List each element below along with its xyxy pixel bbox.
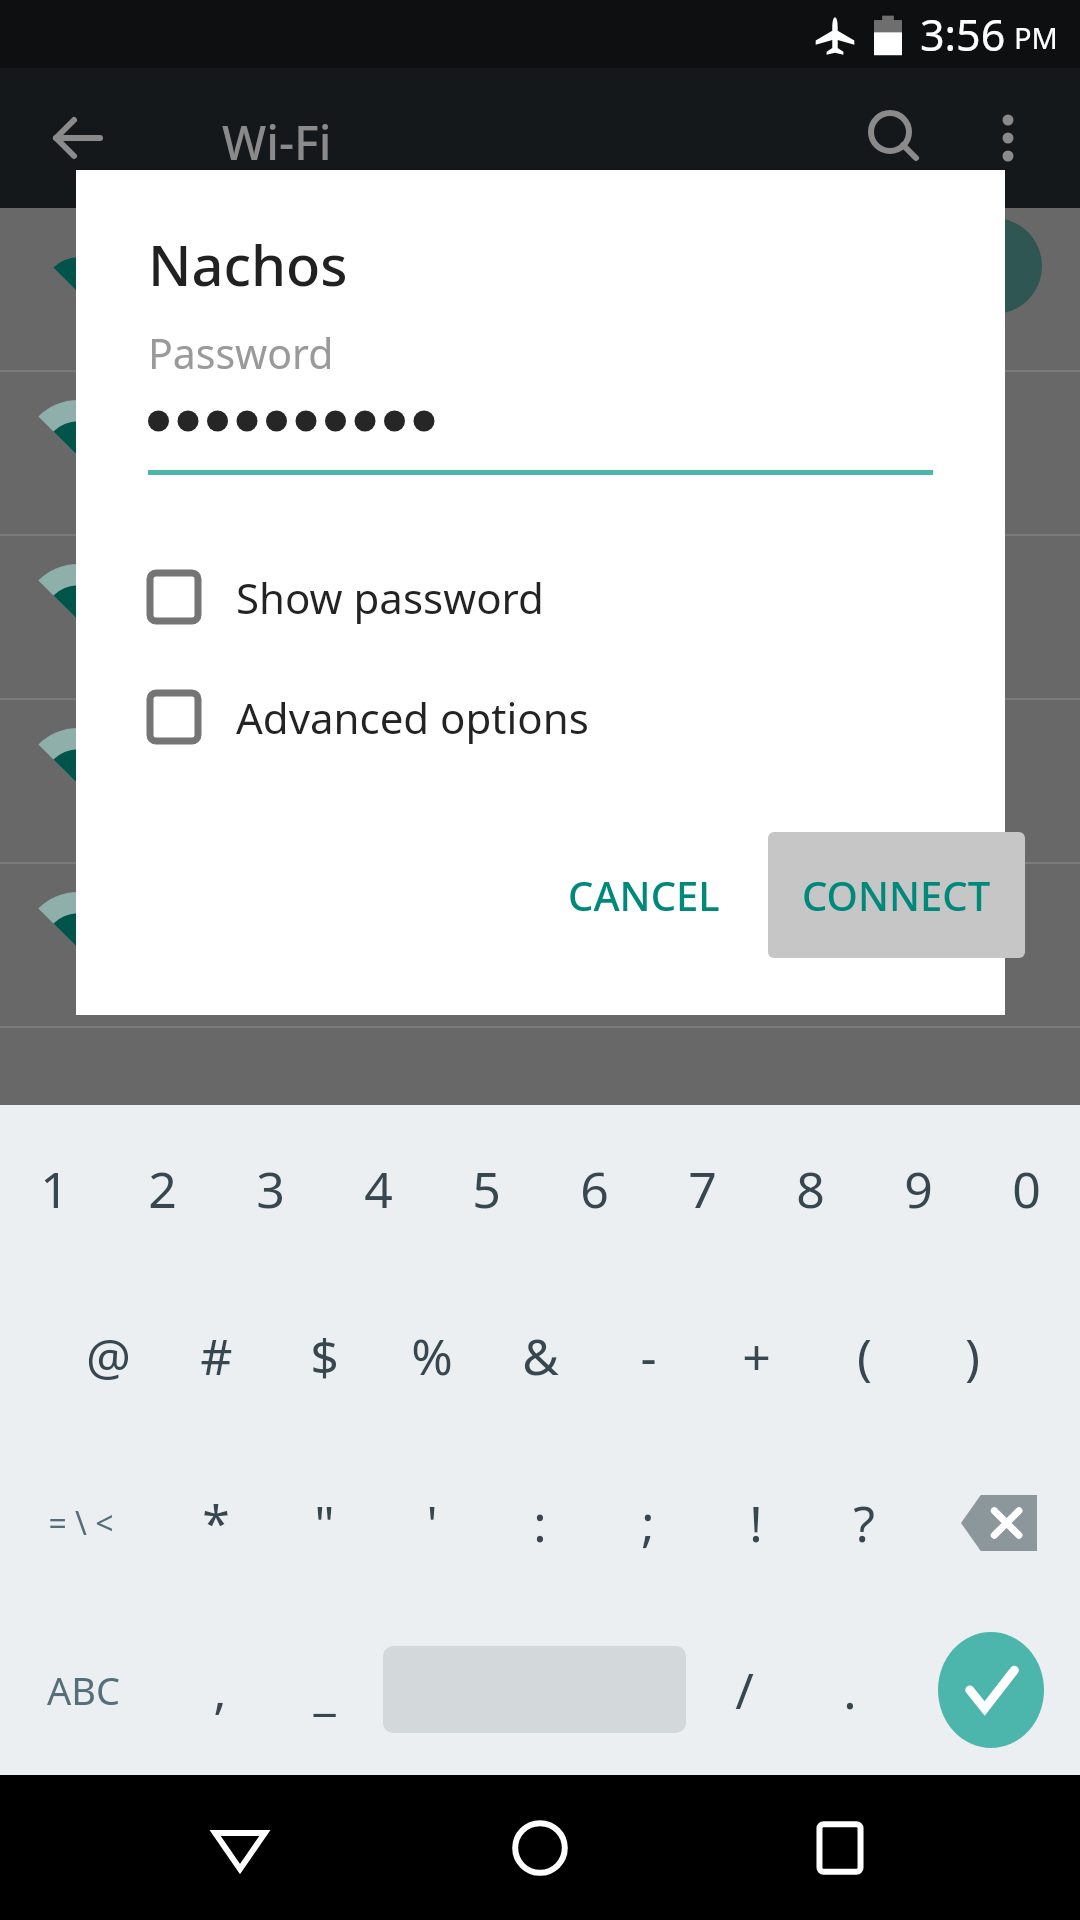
button[interactable]: & xyxy=(486,1272,594,1439)
button[interactable]: 2 xyxy=(108,1105,216,1272)
staticText: 3:56 xyxy=(920,5,1006,64)
button[interactable]: 3 xyxy=(216,1105,324,1272)
staticText: _ xyxy=(313,1656,336,1724)
button[interactable]: 9 xyxy=(864,1105,972,1272)
button[interactable]: ! xyxy=(702,1439,810,1606)
staticText: . xyxy=(843,1656,857,1724)
staticText: ) xyxy=(965,1322,980,1390)
staticText: PM xyxy=(1014,18,1058,57)
staticText: " xyxy=(314,1489,335,1557)
button[interactable]: @ xyxy=(54,1272,162,1439)
button[interactable]: : xyxy=(486,1439,594,1606)
staticText: + xyxy=(742,1322,771,1390)
staticText: 4 xyxy=(364,1155,393,1223)
staticText: 6 xyxy=(580,1155,609,1223)
staticText: ( xyxy=(857,1322,872,1390)
staticText: Wi-Fi xyxy=(222,110,332,174)
button[interactable]: * xyxy=(162,1439,270,1606)
button[interactable]: Search xyxy=(852,96,936,180)
staticText: # xyxy=(200,1322,233,1390)
staticText: ! xyxy=(749,1489,763,1557)
staticText: @ xyxy=(86,1322,131,1390)
button[interactable]: ) xyxy=(918,1272,1026,1439)
button[interactable]: Advanced options xyxy=(136,672,776,762)
staticText: % xyxy=(411,1322,453,1390)
staticText: ? xyxy=(853,1489,875,1557)
button[interactable]: " xyxy=(270,1439,378,1606)
button[interactable]: 8 xyxy=(756,1105,864,1272)
button[interactable]: ; xyxy=(594,1439,702,1606)
staticText: Nachos xyxy=(148,226,348,302)
button[interactable]: Letters xyxy=(0,1606,167,1773)
button[interactable]: Back xyxy=(36,96,120,180)
button[interactable]: $ xyxy=(270,1272,378,1439)
staticText: : xyxy=(533,1489,547,1557)
button[interactable]: ? xyxy=(810,1439,918,1606)
button[interactable]: More options xyxy=(966,96,1050,180)
staticText: , xyxy=(213,1656,227,1724)
staticText: Show password xyxy=(236,569,544,626)
button[interactable]: More symbols xyxy=(0,1439,162,1606)
button[interactable]: % xyxy=(378,1272,486,1439)
staticText: Password xyxy=(148,325,334,381)
staticText: ABC xyxy=(47,1664,120,1716)
staticText: 1 xyxy=(40,1155,69,1223)
staticText: / xyxy=(735,1656,754,1724)
button[interactable]: + xyxy=(702,1272,810,1439)
button[interactable]: . xyxy=(797,1606,902,1773)
staticText: * xyxy=(202,1489,230,1557)
staticText: CANCEL xyxy=(568,868,720,922)
button[interactable]: 5 xyxy=(432,1105,540,1272)
staticText: 3 xyxy=(256,1155,285,1223)
staticText: $ xyxy=(310,1322,339,1390)
button[interactable]: / xyxy=(692,1606,797,1773)
button[interactable]: ' xyxy=(378,1439,486,1606)
staticText: 5 xyxy=(472,1155,501,1223)
staticText: 2 xyxy=(148,1155,177,1223)
button[interactable]: 0 xyxy=(972,1105,1080,1272)
button[interactable]: Recent apps xyxy=(780,1788,900,1908)
button[interactable]: Backspace xyxy=(918,1439,1080,1606)
button[interactable]: , xyxy=(167,1606,272,1773)
staticText: & xyxy=(522,1322,559,1390)
button[interactable]: 7 xyxy=(648,1105,756,1272)
staticText: CONNECT xyxy=(802,868,991,922)
button[interactable]: 6 xyxy=(540,1105,648,1272)
button[interactable]: CONNECT xyxy=(768,832,1025,958)
staticText: ; xyxy=(641,1489,655,1557)
staticText: 8 xyxy=(796,1155,825,1223)
button[interactable]: - xyxy=(594,1272,702,1439)
staticText: - xyxy=(640,1322,657,1390)
button[interactable]: 1 xyxy=(0,1105,108,1272)
staticText: Advanced options xyxy=(236,689,589,746)
staticText: 0 xyxy=(1012,1155,1041,1223)
staticText: 9 xyxy=(904,1155,933,1223)
staticText: 7 xyxy=(688,1155,717,1223)
staticText: = \ < xyxy=(48,1501,114,1545)
button[interactable]: Enter xyxy=(902,1606,1080,1773)
staticText: ' xyxy=(426,1489,438,1557)
button[interactable]: Show password xyxy=(136,552,776,642)
button[interactable]: ( xyxy=(810,1272,918,1439)
button[interactable]: 4 xyxy=(324,1105,432,1272)
button[interactable]: # xyxy=(162,1272,270,1439)
button[interactable]: _ xyxy=(272,1606,377,1773)
button[interactable]: Back xyxy=(180,1788,300,1908)
button[interactable]: Home xyxy=(480,1788,600,1908)
button[interactable]: CANCEL xyxy=(536,842,752,948)
